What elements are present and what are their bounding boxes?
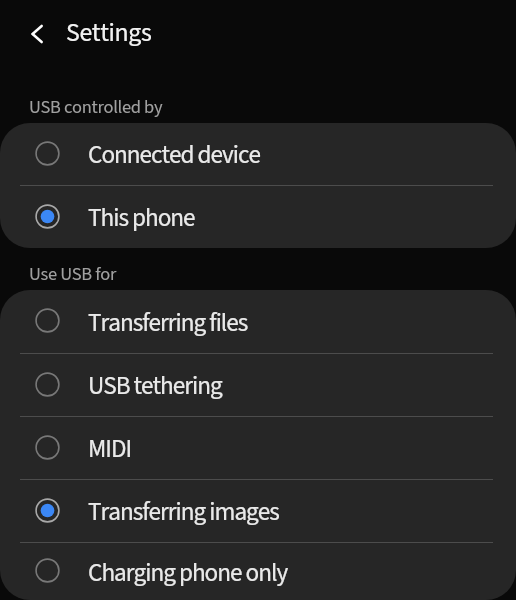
staticText: USB tethering [88,368,222,404]
button[interactable]: USB tethering [0,354,516,417]
button[interactable]: This phone [0,186,516,248]
staticText: Charging phone only [88,555,288,591]
staticText: Use USB for [29,261,116,287]
button[interactable]: Charging phone only [0,543,516,600]
button[interactable]: MIDI [0,417,516,480]
staticText: USB controlled by [29,94,163,120]
staticText: Transferring images [88,494,279,530]
staticText: Connected device [88,137,260,173]
staticText: This phone [88,200,195,236]
staticText: MIDI [88,431,132,467]
button[interactable]: Back [16,13,58,55]
staticText: Transferring files [88,305,248,341]
button[interactable]: Connected device [0,123,516,186]
button[interactable]: Transferring files [0,290,516,354]
button[interactable]: Transferring images [0,480,516,543]
staticText: Settings [66,15,152,52]
